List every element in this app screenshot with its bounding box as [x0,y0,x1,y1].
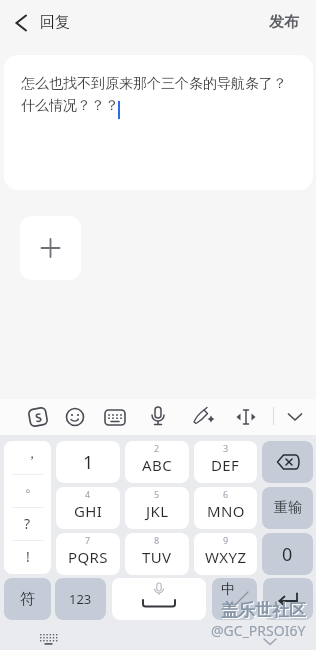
staticText: 9 [223,534,229,546]
button[interactable]: 8 [125,533,189,575]
staticText: TUV [142,547,172,567]
button[interactable]: 0 [262,533,313,575]
staticText: ! [26,547,30,566]
staticText: ABC [142,455,173,475]
staticText: 123 [69,590,92,608]
button[interactable]: 5 [125,487,189,529]
staticText: 1 [83,450,94,475]
button[interactable] [191,405,215,429]
button[interactable]: 2 [125,441,189,483]
button[interactable]: 怎么也找不到原来那个三个条的导航条了？ 什么情况？？？ [4,55,313,190]
staticText: 盖乐世社区 [221,600,306,621]
staticText: 6 [223,488,229,500]
button[interactable] [147,405,169,429]
button[interactable] [262,441,313,483]
button[interactable] [284,406,306,428]
staticText: PQRS [68,547,108,567]
staticText: 5 [154,488,160,500]
button[interactable] [112,578,206,620]
staticText: S [34,408,43,425]
staticText: @GC_PRSOI6Y [211,621,306,640]
staticText: 符 [20,590,35,609]
button[interactable] [263,578,313,620]
button[interactable]: ， [4,441,51,574]
staticText: WXYZ [205,547,247,567]
staticText: 怎么也找不到原来那个三个条的导航条了？ 什么情况？？？ [21,75,287,115]
button[interactable] [104,406,126,428]
staticText: 发布 [269,13,299,32]
staticText: 7 [85,534,91,546]
button[interactable]: S [27,406,49,428]
button[interactable]: 3 [194,441,257,483]
button[interactable]: 中 [212,578,257,620]
staticText: ? [24,514,31,533]
staticText: 中 [221,581,235,599]
staticText: 8 [154,534,160,546]
button[interactable] [36,632,64,648]
button[interactable]: 6 [194,487,257,529]
staticText: ， [25,445,39,463]
staticText: 盖乐世社区 [222,601,307,622]
staticText: MNO [207,501,245,521]
staticText: 4 [85,488,91,500]
staticText: 2 [154,442,160,454]
button[interactable] [235,406,257,428]
staticText: 3 [223,442,229,454]
staticText: DEF [211,455,240,475]
button[interactable]: 4 [56,487,120,529]
button[interactable]: 发布 [258,6,310,38]
button[interactable] [6,8,36,38]
button[interactable] [64,406,86,428]
staticText: 。 [25,478,39,496]
staticText: 0 [282,542,293,567]
button[interactable]: 重输 [262,487,313,529]
button[interactable]: 9 [194,533,257,575]
staticText: JKL [146,501,169,521]
staticText: 回复 [40,13,70,32]
button[interactable] [20,216,81,280]
button[interactable]: 符 [4,578,51,620]
staticText: 重输 [274,499,302,517]
staticText: GHI [74,501,103,521]
button[interactable]: 7 [56,533,120,575]
button[interactable]: 123 [55,578,106,620]
button[interactable]: 1 [56,441,120,483]
